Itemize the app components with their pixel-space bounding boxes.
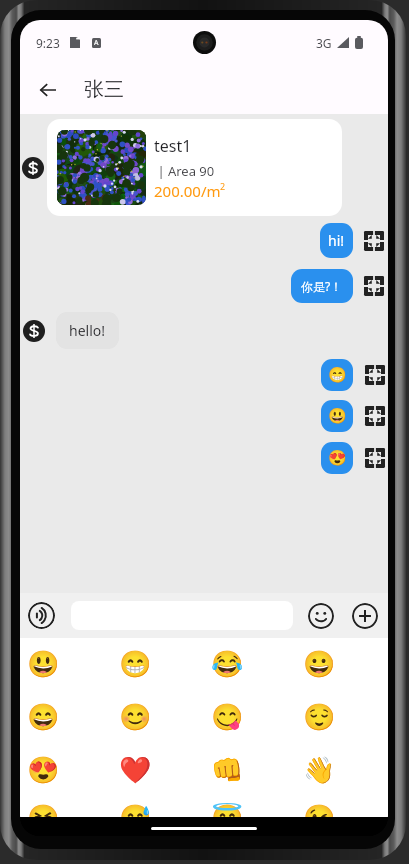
staticText: 😁 <box>328 366 347 384</box>
staticText: 3G <box>316 35 332 51</box>
staticText: test1 <box>154 135 192 157</box>
staticText: 😇 <box>211 803 244 823</box>
button[interactable]: My avatar <box>365 365 385 385</box>
staticText: 😌 <box>303 702 336 732</box>
button[interactable]: hi! <box>320 223 353 258</box>
staticText: | Area 90 <box>154 162 215 180</box>
button[interactable]: ❤️ <box>115 750 155 790</box>
staticText: 👋 <box>303 755 336 785</box>
staticText: 👊 <box>211 755 244 785</box>
button[interactable]: 😄 <box>23 697 63 737</box>
button[interactable]: My avatar <box>364 276 384 296</box>
button[interactable]: 😁 <box>321 359 353 391</box>
button[interactable]: Contact avatar <box>22 157 44 179</box>
staticText: 200.00/m <box>154 181 221 201</box>
button[interactable]: My avatar <box>364 231 384 251</box>
staticText: 😆 <box>27 803 60 823</box>
button[interactable]: 😃 <box>321 400 353 432</box>
button[interactable]: 😉 <box>299 803 339 823</box>
staticText: 😃 <box>27 649 60 679</box>
button[interactable]: 😊 <box>115 697 155 737</box>
staticText: 😄 <box>27 702 60 732</box>
button[interactable]: Emoji <box>308 603 334 629</box>
button[interactable]: 👊 <box>207 750 247 790</box>
button[interactable]: 😆 <box>23 803 63 823</box>
button[interactable]: 😋 <box>207 697 247 737</box>
staticText: 😁 <box>119 649 152 679</box>
staticText: 😍 <box>328 449 347 467</box>
button[interactable]: 😂 <box>207 644 247 684</box>
button[interactable]: 😅 <box>115 803 155 823</box>
staticText: A <box>94 38 99 48</box>
button[interactable]: 😃 <box>23 644 63 684</box>
button[interactable]: 😀 <box>299 644 339 684</box>
staticText: 😊 <box>119 702 152 732</box>
button[interactable]: Contact avatar <box>23 320 45 342</box>
staticText: 😉 <box>303 803 336 823</box>
button[interactable]: test1 <box>47 119 342 216</box>
button[interactable]: hello! <box>56 312 119 349</box>
button[interactable]: 😇 <box>207 803 247 823</box>
staticText: 😀 <box>303 649 336 679</box>
button[interactable]: More options <box>352 603 378 629</box>
staticText: ❤️ <box>119 755 152 785</box>
button[interactable]: My avatar <box>365 448 385 468</box>
staticText: hi! <box>328 231 345 250</box>
button[interactable]: 😌 <box>299 697 339 737</box>
staticText: hello! <box>69 321 106 340</box>
button[interactable]: Back <box>30 72 66 108</box>
button[interactable]: My avatar <box>365 406 385 426</box>
staticText: 😋 <box>211 702 244 732</box>
staticText: 张三 <box>84 77 124 102</box>
button[interactable]: 😍 <box>321 442 353 474</box>
button[interactable]: Voice message <box>28 602 55 629</box>
staticText: 9:23 <box>36 35 60 51</box>
button[interactable]: 😍 <box>23 750 63 790</box>
staticText: 😍 <box>27 755 60 785</box>
staticText: 2 <box>220 180 226 192</box>
button[interactable]: 👋 <box>299 750 339 790</box>
staticText: 😅 <box>119 803 152 823</box>
button[interactable]: 😁 <box>115 644 155 684</box>
staticText: 😃 <box>328 407 347 425</box>
staticText: 😂 <box>211 649 244 679</box>
button[interactable]: 你是?！ <box>291 269 353 303</box>
staticText: 你是?！ <box>301 278 343 294</box>
